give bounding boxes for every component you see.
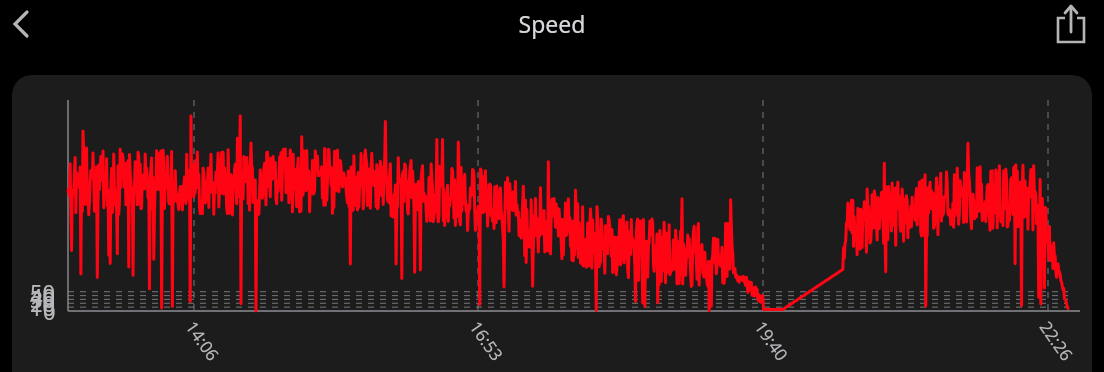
button[interactable]: Share (1046, 2, 1096, 48)
button[interactable]: Back (0, 0, 52, 48)
button[interactable] (12, 75, 1092, 372)
